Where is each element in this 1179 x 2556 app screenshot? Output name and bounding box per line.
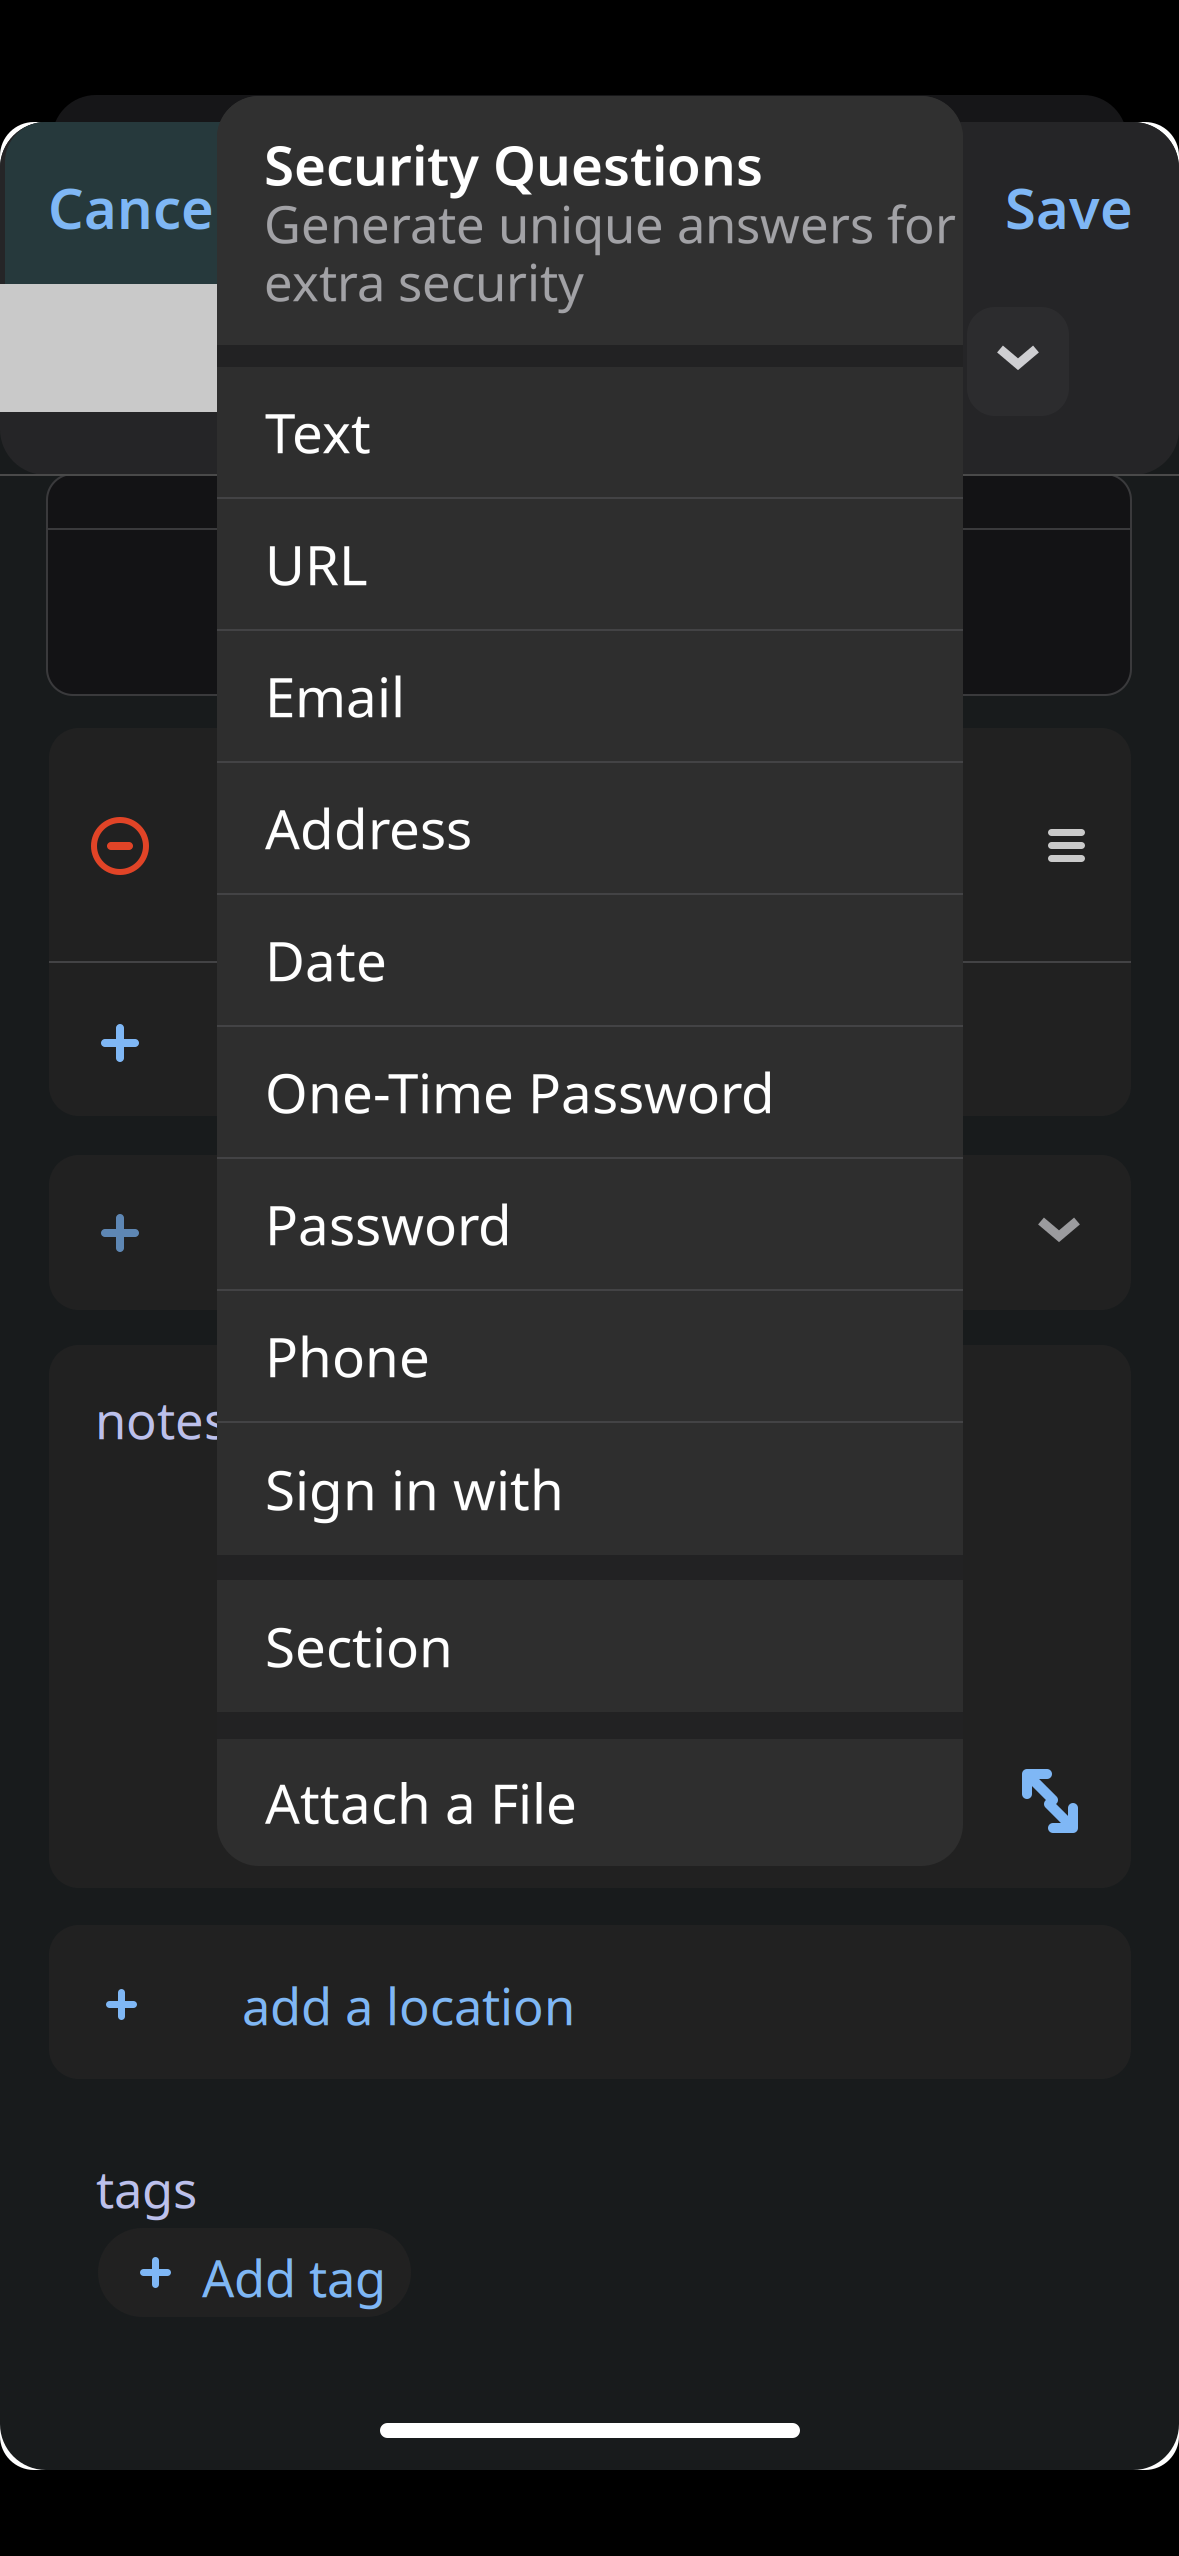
staticText: notes bbox=[95, 1386, 228, 1453]
button[interactable]: Phone bbox=[217, 1291, 963, 1421]
button[interactable]: Address bbox=[217, 763, 963, 893]
staticText: Password bbox=[265, 1188, 512, 1260]
staticText: Add tag bbox=[202, 2244, 386, 2311]
button[interactable]: Password bbox=[217, 1159, 963, 1289]
button[interactable]: add a location bbox=[49, 1925, 1131, 2079]
staticText: Attach a File bbox=[265, 1766, 577, 1839]
button[interactable]: Add section bbox=[101, 1214, 139, 1252]
staticText: Cancel bbox=[48, 170, 230, 244]
button[interactable]: Reorder bbox=[1048, 829, 1085, 862]
staticText: Email bbox=[265, 660, 405, 732]
button[interactable]: Attach a File bbox=[217, 1739, 963, 1866]
button[interactable]: URL bbox=[217, 499, 963, 629]
button[interactable]: Date bbox=[217, 895, 963, 1025]
staticText: Text bbox=[265, 396, 371, 468]
staticText: Security Questions bbox=[264, 128, 763, 201]
staticText: One-Time Password bbox=[265, 1056, 775, 1128]
staticText: Generate unique answers for bbox=[264, 190, 956, 257]
staticText: Sign in with bbox=[265, 1453, 564, 1525]
staticText: add a location bbox=[242, 1972, 575, 2039]
button[interactable]: Section bbox=[217, 1580, 963, 1712]
button[interactable]: Delete field bbox=[93, 819, 147, 873]
button[interactable]: Add field bbox=[101, 1024, 139, 1062]
button[interactable]: Collapse bbox=[1036, 1216, 1082, 1239]
staticText: Phone bbox=[265, 1320, 430, 1392]
button[interactable]: Collapse field bbox=[995, 344, 1041, 367]
button[interactable]: Text bbox=[217, 367, 963, 497]
button[interactable]: Add tag bbox=[98, 2228, 411, 2317]
staticText: extra security bbox=[264, 248, 584, 315]
staticText: Save bbox=[1005, 170, 1133, 244]
staticText: Date bbox=[265, 924, 387, 996]
button[interactable]: Save bbox=[991, 158, 1147, 256]
button[interactable]: Expand notes bbox=[1019, 1768, 1079, 1834]
button[interactable]: Email bbox=[217, 631, 963, 761]
staticText: Address bbox=[265, 792, 472, 864]
staticText: Section bbox=[265, 1610, 453, 1682]
staticText: URL bbox=[265, 528, 368, 600]
button[interactable]: One-Time Password bbox=[217, 1027, 963, 1157]
button[interactable]: Sign in with bbox=[217, 1423, 963, 1555]
staticText: tags bbox=[96, 2155, 197, 2222]
button[interactable]: Cancel bbox=[34, 158, 244, 256]
